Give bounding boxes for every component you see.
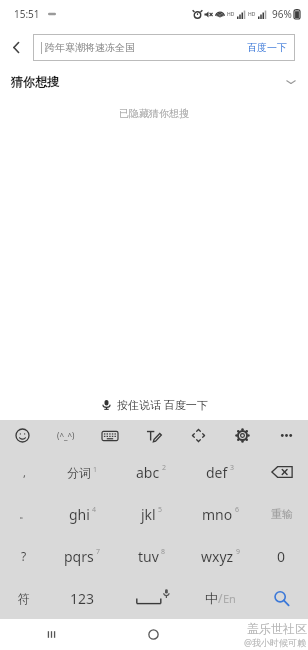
staticText: 中 bbox=[205, 590, 218, 606]
button[interactable]: 分词 bbox=[48, 451, 117, 493]
staticText: 3 bbox=[230, 463, 235, 473]
button[interactable]: Keyboard bbox=[88, 420, 132, 451]
button[interactable]: 按住说话 百度一下 bbox=[0, 388, 308, 420]
staticText: 123 bbox=[70, 589, 95, 608]
button[interactable]: tuv bbox=[117, 535, 186, 577]
staticText: 。 bbox=[19, 507, 30, 521]
button[interactable]: def bbox=[186, 451, 255, 493]
button[interactable]: wxyz bbox=[186, 535, 255, 577]
button[interactable]: Emoji bbox=[0, 420, 44, 451]
staticText: HD bbox=[248, 11, 256, 18]
staticText: abc bbox=[136, 463, 160, 482]
staticText: (^_^) bbox=[57, 430, 75, 441]
staticText: def bbox=[206, 463, 228, 482]
button[interactable]: Switch language bbox=[186, 577, 255, 619]
staticText: 8 bbox=[161, 547, 166, 557]
button[interactable]: pqrs bbox=[48, 535, 117, 577]
button[interactable]: Home bbox=[102, 619, 205, 650]
staticText: 2 bbox=[162, 463, 167, 473]
button[interactable]: 百度一下 bbox=[239, 41, 295, 54]
button[interactable]: Backspace bbox=[255, 451, 308, 493]
staticText: 6 bbox=[235, 505, 240, 515]
staticText: 96% bbox=[272, 7, 292, 21]
button[interactable]: More bbox=[264, 420, 308, 451]
staticText: En bbox=[223, 591, 236, 606]
button[interactable]: Back bbox=[205, 619, 308, 650]
staticText: 15:51 bbox=[14, 7, 40, 21]
button[interactable]: ? bbox=[0, 535, 48, 577]
button[interactable]: 猜你想搜 bbox=[11, 74, 297, 89]
button[interactable]: Back bbox=[0, 28, 33, 66]
button[interactable]: 跨年寒潮将速冻全国 bbox=[33, 34, 295, 61]
staticText: HD bbox=[227, 11, 235, 18]
staticText: 按住说话 百度一下 bbox=[117, 397, 208, 412]
button[interactable]: Kaomoji bbox=[44, 420, 88, 451]
button[interactable]: Move bbox=[176, 420, 220, 451]
staticText: 5 bbox=[158, 505, 163, 515]
staticText: 百度一下 bbox=[247, 41, 287, 54]
staticText: 分词 bbox=[67, 465, 91, 480]
button[interactable]: mno bbox=[186, 493, 255, 535]
staticText: mno bbox=[202, 505, 233, 524]
staticText: 符 bbox=[18, 591, 30, 606]
button[interactable]: Handwriting bbox=[132, 420, 176, 451]
staticText: 盖乐世社区 bbox=[247, 621, 307, 636]
staticText: 重输 bbox=[271, 507, 293, 521]
staticText: jkl bbox=[141, 505, 156, 524]
button[interactable]: jkl bbox=[117, 493, 186, 535]
other: Collapse bbox=[285, 76, 297, 88]
staticText: 1 bbox=[93, 465, 98, 475]
staticText: / bbox=[218, 590, 223, 606]
staticText: 0 bbox=[277, 547, 286, 566]
button[interactable]: 0 bbox=[255, 535, 308, 577]
staticText: 9 bbox=[236, 547, 241, 557]
button[interactable]: 123 bbox=[48, 577, 117, 619]
button[interactable]: Search bbox=[255, 577, 308, 619]
staticText: wxyz bbox=[201, 547, 234, 566]
staticText: ghi bbox=[69, 505, 90, 524]
staticText: 已隐藏猜你想搜 bbox=[0, 107, 308, 120]
button[interactable]: , bbox=[0, 451, 48, 493]
staticText: 猜你想搜 bbox=[11, 74, 59, 89]
button[interactable]: Settings bbox=[220, 420, 264, 451]
button[interactable]: Recents bbox=[0, 619, 102, 650]
staticText: 跨年寒潮将速冻全国 bbox=[45, 41, 239, 54]
staticText: 4 bbox=[92, 505, 97, 515]
staticText: , bbox=[23, 465, 26, 480]
staticText: ? bbox=[21, 548, 27, 564]
staticText: 7 bbox=[96, 547, 101, 557]
button[interactable]: abc bbox=[117, 451, 186, 493]
staticText: pqrs bbox=[64, 547, 94, 566]
button[interactable]: Space bbox=[117, 577, 186, 619]
button[interactable]: 重输 bbox=[255, 493, 308, 535]
button[interactable]: ghi bbox=[48, 493, 117, 535]
staticText: @我小时候可赖 bbox=[244, 636, 307, 648]
staticText: tuv bbox=[138, 547, 159, 566]
button[interactable]: 符 bbox=[0, 577, 48, 619]
